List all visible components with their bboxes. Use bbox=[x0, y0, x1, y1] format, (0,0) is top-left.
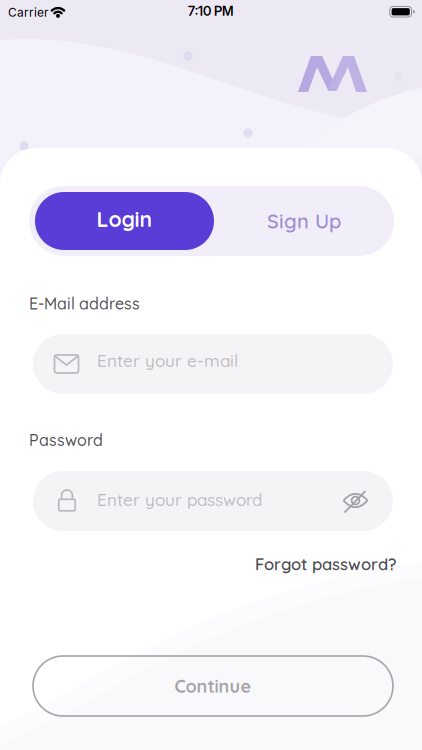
staticText: Carrier bbox=[8, 5, 49, 19]
button[interactable]: Forgot password? bbox=[29, 552, 396, 576]
staticText: E-Mail address bbox=[29, 293, 140, 313]
staticText: Continue bbox=[174, 675, 251, 697]
button[interactable]: Sign Up bbox=[214, 192, 394, 250]
staticText: Password bbox=[29, 430, 103, 450]
staticText: Forgot password? bbox=[255, 554, 396, 574]
staticText: Sign Up bbox=[267, 208, 341, 233]
button[interactable]: Show password bbox=[340, 488, 371, 515]
staticText: Enter your e-mail bbox=[97, 350, 238, 371]
staticText: Login bbox=[96, 206, 152, 232]
button[interactable]: Login bbox=[35, 192, 214, 250]
staticText: Enter your password bbox=[97, 489, 262, 510]
button[interactable]: Continue bbox=[33, 656, 393, 716]
staticText: 7:10 PM bbox=[188, 3, 234, 19]
